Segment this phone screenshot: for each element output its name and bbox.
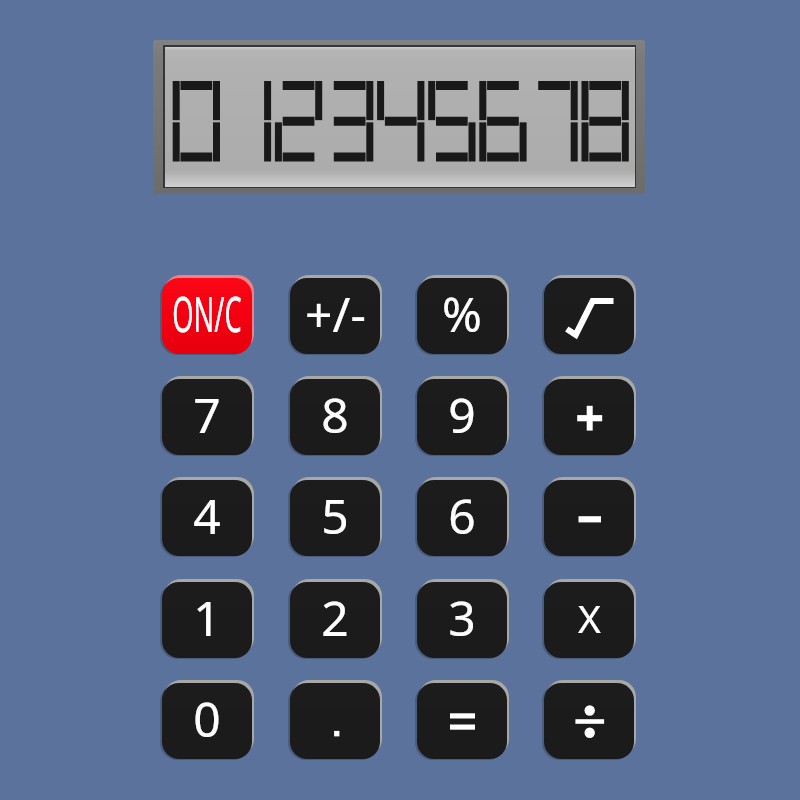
- staticText: 6: [448, 483, 476, 548]
- staticText: 7: [193, 382, 221, 447]
- button[interactable]: Decimal point: [290, 683, 380, 759]
- staticText: 0: [193, 686, 221, 751]
- staticText: 9: [448, 382, 476, 447]
- button[interactable]: 7: [162, 379, 252, 455]
- button[interactable]: On / Clear: [162, 278, 252, 354]
- staticText: 3: [448, 585, 476, 650]
- button[interactable]: 9: [417, 379, 507, 455]
- button[interactable]: %: [417, 278, 507, 354]
- staticText: +/-: [305, 281, 366, 346]
- button[interactable]: 4: [162, 480, 252, 556]
- staticText: %: [442, 281, 482, 346]
- button[interactable]: X: [544, 582, 634, 658]
- button[interactable]: 6: [417, 480, 507, 556]
- button[interactable]: Plus: [544, 379, 634, 455]
- button[interactable]: 5: [290, 480, 380, 556]
- staticText: 5: [321, 483, 349, 548]
- button[interactable]: 1: [162, 582, 252, 658]
- button[interactable]: Minus: [544, 480, 634, 556]
- button[interactable]: 3: [417, 582, 507, 658]
- staticText: X: [578, 591, 601, 644]
- staticText: 4: [193, 483, 221, 548]
- button[interactable]: 8: [290, 379, 380, 455]
- staticText: 8: [321, 382, 349, 447]
- button[interactable]: Divide: [544, 683, 634, 759]
- button[interactable]: +/-: [290, 278, 380, 354]
- button[interactable]: 0: [162, 683, 252, 759]
- staticText: 2: [321, 585, 349, 650]
- button[interactable]: Equals: [417, 683, 507, 759]
- button[interactable]: Square root: [544, 278, 634, 354]
- button[interactable]: 2: [290, 582, 380, 658]
- staticText: ON/C: [172, 279, 242, 347]
- staticText: 1: [193, 585, 221, 650]
